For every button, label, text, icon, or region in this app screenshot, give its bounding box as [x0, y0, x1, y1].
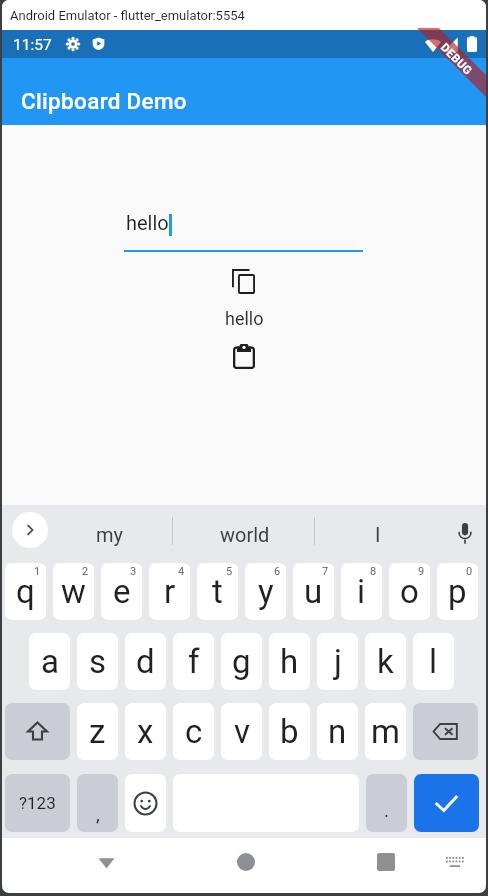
button[interactable]: world	[201, 505, 289, 563]
button[interactable]: I	[334, 505, 422, 563]
staticText: t	[212, 572, 223, 611]
staticText: 0	[466, 565, 473, 578]
staticText: o	[400, 572, 419, 611]
staticText: s	[89, 642, 107, 681]
staticText: h	[280, 642, 299, 681]
button[interactable]: i	[341, 563, 382, 620]
staticText: my	[96, 523, 124, 546]
button[interactable]: m	[365, 703, 406, 760]
button[interactable]: d	[125, 633, 166, 690]
staticText: a	[41, 642, 59, 681]
staticText: f	[188, 642, 200, 681]
button[interactable]: x	[125, 703, 166, 760]
button[interactable]: Recents	[358, 838, 414, 886]
button[interactable]: Hide keyboard	[78, 838, 134, 886]
staticText: DEBUG	[439, 40, 475, 77]
staticText: i	[357, 572, 366, 611]
staticText: 2	[82, 565, 89, 578]
button[interactable]: Switch keyboard	[431, 838, 479, 886]
button[interactable]: b	[269, 703, 310, 760]
staticText: x	[137, 712, 154, 751]
staticText: w	[61, 572, 86, 611]
button[interactable]: p	[437, 563, 478, 620]
button[interactable]: c	[173, 703, 214, 760]
button[interactable]: hello	[124, 211, 363, 257]
staticText: 1	[34, 565, 41, 578]
staticText: ?123	[19, 793, 56, 813]
staticText: r	[164, 572, 176, 611]
button[interactable]: More suggestions	[12, 512, 48, 548]
staticText: y	[258, 572, 274, 611]
button[interactable]: Paste	[227, 338, 263, 374]
staticText: u	[304, 572, 323, 611]
button[interactable]: my	[66, 505, 154, 563]
staticText: e	[113, 572, 131, 611]
staticText: 11:57	[13, 36, 52, 54]
staticText: .	[384, 799, 390, 821]
staticText: l	[429, 642, 438, 681]
button[interactable]: s	[77, 633, 118, 690]
staticText: p	[448, 572, 467, 611]
button[interactable]: Home	[218, 838, 274, 886]
staticText: Clipboard Demo	[21, 88, 187, 114]
button[interactable]: l	[413, 633, 454, 690]
button[interactable]: j	[317, 633, 358, 690]
staticText: 9	[418, 565, 425, 578]
staticText: j	[334, 642, 342, 681]
staticText: I	[375, 523, 381, 546]
staticText: 8	[370, 565, 377, 578]
staticText: d	[136, 642, 155, 681]
button[interactable]: t	[197, 563, 238, 620]
staticText: hello	[225, 308, 264, 329]
staticText: z	[89, 712, 106, 751]
button[interactable]: z	[77, 703, 118, 760]
staticText: ,	[96, 803, 100, 825]
button[interactable]: a	[29, 633, 70, 690]
button[interactable]: v	[221, 703, 262, 760]
button[interactable]: q	[5, 563, 46, 620]
button[interactable]: Emoji	[125, 774, 166, 832]
button[interactable]: Shift	[5, 703, 70, 760]
staticText: c	[185, 712, 203, 751]
button[interactable]: Backspace	[413, 703, 478, 760]
button[interactable]: ?123	[5, 774, 70, 832]
button[interactable]: o	[389, 563, 430, 620]
staticText: 6	[274, 565, 281, 578]
button[interactable]: .	[366, 774, 407, 832]
button[interactable]: r	[149, 563, 190, 620]
button[interactable]: h	[269, 633, 310, 690]
staticText: 5	[226, 565, 233, 578]
staticText: Android Emulator - flutter_emulator:5554	[10, 8, 245, 23]
staticText: k	[377, 642, 394, 681]
button[interactable]: g	[221, 633, 262, 690]
button[interactable]: Enter	[414, 774, 479, 832]
button[interactable]: Copy	[226, 263, 262, 299]
staticText: 7	[322, 565, 329, 578]
staticText: b	[280, 712, 299, 751]
staticText: v	[234, 712, 250, 751]
button[interactable]: w	[53, 563, 94, 620]
staticText: 4	[178, 565, 185, 578]
staticText: m	[371, 712, 400, 751]
staticText: 3	[130, 565, 137, 578]
button[interactable]: u	[293, 563, 334, 620]
button[interactable]: Voice input	[440, 505, 486, 563]
staticText: g	[232, 642, 251, 681]
staticText: hello	[126, 211, 169, 234]
staticText: q	[16, 572, 35, 611]
button[interactable]: f	[173, 633, 214, 690]
button[interactable]: ,	[77, 774, 118, 832]
staticText: world	[220, 523, 270, 546]
button[interactable]: k	[365, 633, 406, 690]
staticText: n	[328, 712, 347, 751]
button[interactable]: e	[101, 563, 142, 620]
button[interactable]: n	[317, 703, 358, 760]
button[interactable]: y	[245, 563, 286, 620]
